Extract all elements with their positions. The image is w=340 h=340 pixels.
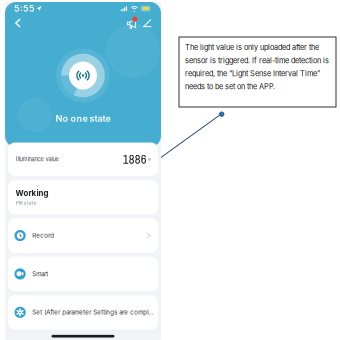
button[interactable]: Record [8, 218, 158, 253]
staticText: 1886 [123, 151, 147, 168]
staticText: lx [148, 157, 151, 161]
staticText: The light value is only uploaded after t… [185, 43, 329, 91]
button[interactable]: Set (After parameter Settings are compl… [8, 295, 158, 330]
staticText: 5:55 [14, 3, 35, 14]
staticText: Working [15, 188, 48, 198]
button[interactable]: Back [11, 16, 25, 30]
staticText: Illuminance value [15, 156, 58, 163]
staticText: Set (After parameter Settings are compl… [32, 309, 153, 316]
staticText: PIR state [15, 200, 36, 206]
button[interactable]: Announcements [124, 16, 139, 30]
staticText: No one state [55, 113, 110, 124]
staticText: Smart [32, 270, 48, 278]
staticText: Record [32, 232, 54, 239]
button[interactable]: Smart [8, 257, 158, 291]
button[interactable]: Edit [139, 16, 156, 30]
